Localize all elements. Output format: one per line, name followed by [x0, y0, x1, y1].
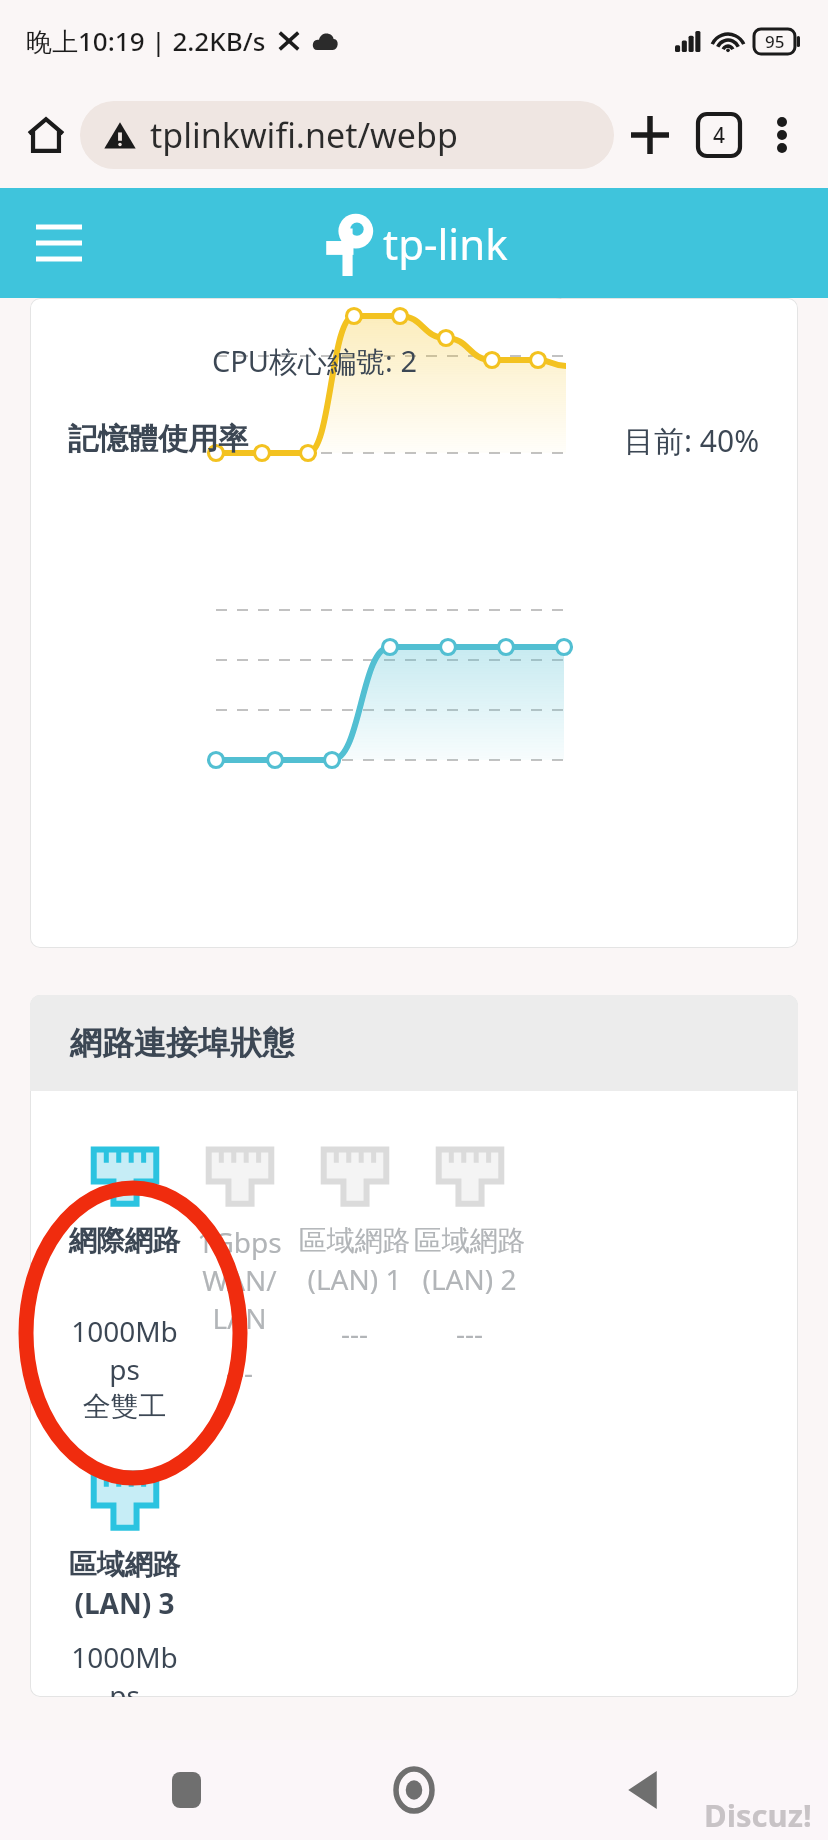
button[interactable]: Ethernet port 區域網路: [67, 1467, 182, 1697]
staticText: 95: [765, 30, 785, 53]
staticText: CPU核心編號: 2: [212, 341, 417, 381]
other: Ethernet port 區域網路: [436, 1143, 504, 1207]
staticText: 區域網路 (LAN) 3: [67, 1547, 182, 1622]
other: Ethernet port 區域網路: [321, 1143, 389, 1207]
staticText: 1000Mbps 全雙工: [67, 1638, 182, 1697]
staticText: 網際網路: [67, 1223, 182, 1258]
staticText: 1Gbps WAN/LAN: [182, 1223, 297, 1337]
button[interactable]: More options: [752, 105, 812, 165]
staticText: 記憶體使用率: [68, 420, 248, 458]
button[interactable]: Home: [372, 1748, 456, 1832]
staticText: ---: [297, 1314, 412, 1352]
staticText: Discuz!: [704, 1794, 812, 1836]
other: Ethernet port 區域網路: [91, 1467, 159, 1531]
staticText: tplinkwifi.net/webp: [150, 112, 458, 158]
button[interactable]: Recents: [144, 1748, 228, 1832]
button[interactable]: Ethernet port 區域網路: [412, 1143, 527, 1352]
button[interactable]: New tab: [614, 99, 686, 171]
staticText: ---: [182, 1353, 297, 1391]
staticText: 區域網路 (LAN) 1: [297, 1223, 412, 1298]
button[interactable]: Home: [18, 107, 74, 163]
staticText: 1000Mbps 全雙工: [67, 1312, 182, 1425]
staticText: 晚上10:19 | 2.2KB/s: [26, 23, 266, 59]
staticText: 區域網路 (LAN) 2: [412, 1223, 527, 1298]
staticText: 目前: 40%: [624, 420, 760, 461]
button[interactable]: Ethernet port 區域網路: [297, 1143, 412, 1352]
button[interactable]: Tabs: [686, 102, 752, 168]
button[interactable]: Ethernet port 1Gbps: [182, 1143, 297, 1391]
button[interactable]: Menu: [26, 210, 92, 276]
staticText: ---: [412, 1314, 527, 1352]
staticText: 網路連接埠狀態: [70, 1023, 294, 1063]
other: Ethernet port 1Gbps: [206, 1143, 274, 1207]
button[interactable]: Back: [600, 1748, 684, 1832]
staticText: tp-link: [383, 215, 508, 272]
button[interactable]: tplinkwifi.net/webp: [80, 101, 614, 169]
staticText: 4: [713, 121, 726, 150]
button[interactable]: Ethernet port 網際網路: [67, 1143, 182, 1425]
other: Ethernet port 網際網路: [91, 1143, 159, 1207]
